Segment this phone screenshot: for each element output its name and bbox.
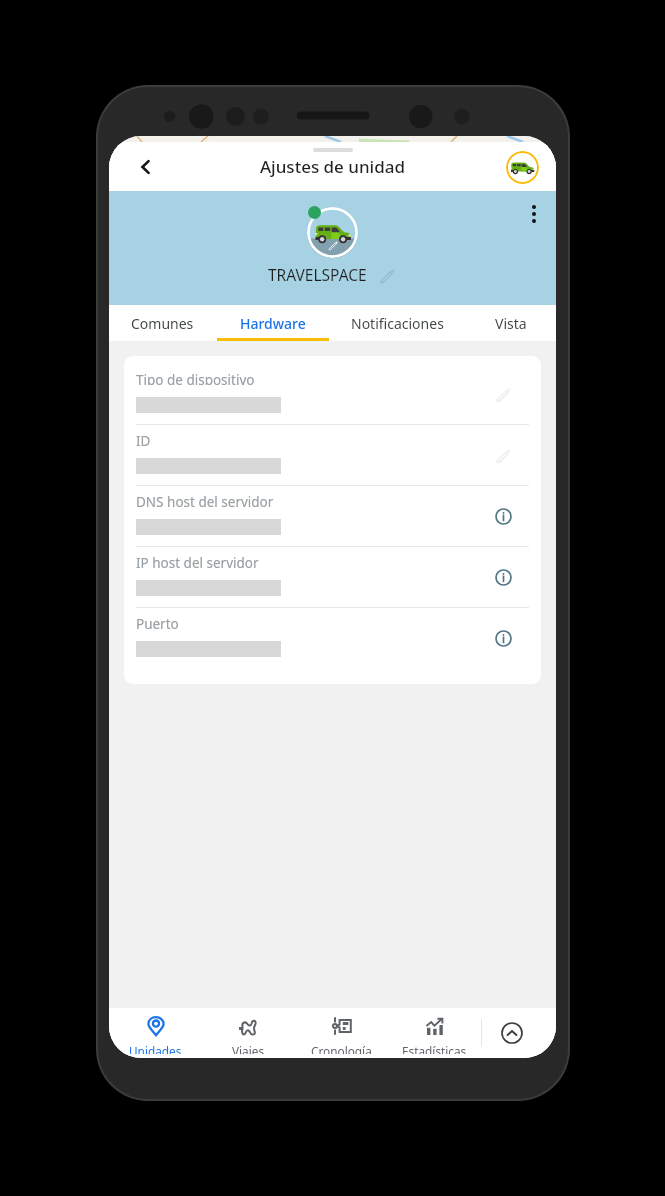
staticText: Comunes xyxy=(131,314,194,333)
staticText: ID xyxy=(136,432,151,446)
staticText: Hardware xyxy=(240,314,306,333)
staticText: Estadísticas xyxy=(402,1043,467,1054)
staticText: Ajustes de unidad xyxy=(109,155,556,178)
button[interactable]: Puerto xyxy=(124,608,541,668)
staticText: Viajes xyxy=(232,1043,265,1054)
button[interactable]: Information xyxy=(481,555,525,599)
staticText: TRAVELSPACE xyxy=(268,264,367,285)
staticText: Vista xyxy=(495,314,527,333)
button[interactable]: ID xyxy=(124,425,541,486)
button[interactable]: Unidades xyxy=(109,1008,202,1058)
button[interactable]: Estadísticas xyxy=(388,1008,481,1058)
button[interactable]: Cronología xyxy=(295,1008,388,1058)
button[interactable]: IP host del servidor xyxy=(124,547,541,608)
staticText: Tipo de dispositivo xyxy=(136,371,255,385)
button[interactable]: Information xyxy=(481,494,525,538)
button[interactable]: DNS host del servidor xyxy=(124,486,541,547)
button[interactable]: Unit avatar xyxy=(500,145,545,189)
button[interactable]: Expand xyxy=(482,1008,542,1058)
button[interactable]: Tipo de dispositivo xyxy=(124,364,541,425)
staticText: Notificaciones xyxy=(351,314,444,333)
button[interactable]: More options xyxy=(512,191,556,237)
staticText: Cronología xyxy=(311,1043,372,1054)
staticText: DNS host del servidor xyxy=(136,493,274,507)
button[interactable]: Edit name xyxy=(377,265,397,285)
button[interactable]: Vista xyxy=(466,305,556,341)
staticText: Unidades xyxy=(129,1043,182,1054)
staticText: IP host del servidor xyxy=(136,554,259,568)
button[interactable]: Comunes xyxy=(109,305,216,341)
button[interactable]: Information xyxy=(481,616,525,660)
button[interactable]: Hardware xyxy=(216,305,329,341)
staticText: Puerto xyxy=(136,615,179,629)
button[interactable]: Back xyxy=(123,145,167,189)
button[interactable]: Notificaciones xyxy=(329,305,466,341)
button[interactable]: Viajes xyxy=(202,1008,295,1058)
